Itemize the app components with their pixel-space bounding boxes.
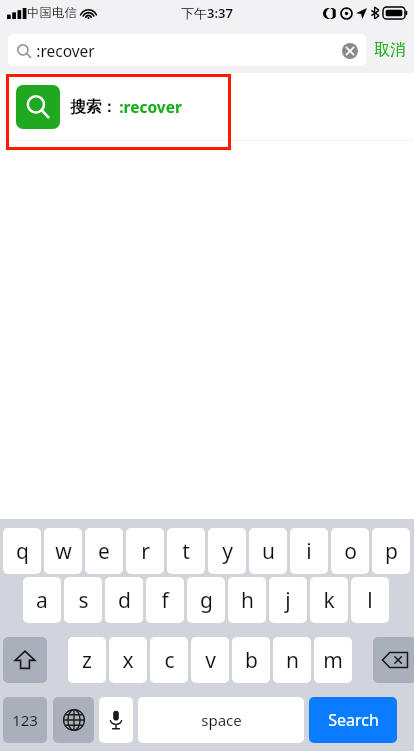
button[interactable]: b bbox=[232, 637, 270, 683]
button[interactable]: 搜索： bbox=[0, 73, 414, 140]
staticText: e bbox=[98, 537, 110, 566]
button[interactable]: n bbox=[273, 637, 311, 683]
staticText: 搜索： bbox=[70, 97, 117, 117]
button[interactable]: w bbox=[44, 528, 82, 574]
button[interactable]: x bbox=[109, 637, 147, 683]
button[interactable]: a bbox=[23, 577, 61, 623]
button[interactable]: j bbox=[269, 577, 307, 623]
button[interactable]: Backspace bbox=[373, 637, 414, 683]
staticText: z bbox=[82, 646, 92, 675]
staticText: h bbox=[241, 586, 254, 615]
staticText: y bbox=[222, 537, 233, 566]
button[interactable]: :recover bbox=[8, 34, 366, 66]
staticText: l bbox=[367, 586, 373, 615]
staticText: Search bbox=[328, 709, 379, 731]
staticText: o bbox=[344, 537, 357, 566]
staticText: m bbox=[323, 646, 343, 675]
staticText: 取消 bbox=[374, 40, 406, 60]
staticText: 下午3:37 bbox=[181, 4, 233, 22]
button[interactable]: o bbox=[331, 528, 369, 574]
staticText: r bbox=[141, 537, 150, 566]
staticText: f bbox=[161, 586, 169, 615]
button[interactable]: Dictation bbox=[99, 697, 133, 743]
button[interactable]: d bbox=[105, 577, 143, 623]
staticText: space bbox=[201, 710, 242, 730]
button[interactable]: q bbox=[3, 528, 41, 574]
button[interactable]: p bbox=[372, 528, 410, 574]
staticText: k bbox=[323, 586, 335, 615]
button[interactable]: m bbox=[314, 637, 352, 683]
staticText: g bbox=[200, 586, 213, 615]
button[interactable]: Shift bbox=[3, 637, 47, 683]
button[interactable]: 取消 bbox=[374, 40, 406, 60]
button[interactable]: e bbox=[85, 528, 123, 574]
button[interactable]: h bbox=[228, 577, 266, 623]
button[interactable]: Search bbox=[309, 697, 397, 743]
button[interactable]: t bbox=[167, 528, 205, 574]
staticText: v bbox=[205, 646, 216, 675]
button[interactable]: c bbox=[150, 637, 188, 683]
staticText: w bbox=[55, 537, 72, 566]
button[interactable]: u bbox=[249, 528, 287, 574]
staticText: i bbox=[306, 537, 312, 566]
other: Backspace bbox=[382, 651, 408, 669]
other: Change keyboard bbox=[63, 709, 85, 731]
staticText: c bbox=[164, 646, 175, 675]
staticText: p bbox=[385, 537, 398, 566]
staticText: s bbox=[78, 586, 89, 615]
staticText: j bbox=[285, 586, 291, 615]
staticText: x bbox=[122, 646, 134, 675]
staticText: 123 bbox=[12, 710, 38, 730]
staticText: a bbox=[36, 586, 48, 615]
staticText: b bbox=[245, 646, 258, 675]
other: Shift bbox=[14, 649, 36, 671]
button[interactable]: 123 bbox=[3, 697, 47, 743]
other: Dictation bbox=[109, 709, 123, 731]
button[interactable]: l bbox=[351, 577, 389, 623]
button[interactable]: space bbox=[138, 697, 304, 743]
staticText: n bbox=[286, 646, 299, 675]
button[interactable]: Clear text bbox=[340, 41, 360, 61]
staticText: u bbox=[262, 537, 275, 566]
staticText: :recover bbox=[119, 96, 182, 117]
button[interactable]: g bbox=[187, 577, 225, 623]
button[interactable]: i bbox=[290, 528, 328, 574]
staticText: t bbox=[182, 537, 190, 566]
button[interactable]: k bbox=[310, 577, 348, 623]
button[interactable]: r bbox=[126, 528, 164, 574]
button[interactable]: Change keyboard bbox=[53, 697, 94, 743]
button[interactable]: s bbox=[64, 577, 102, 623]
button[interactable]: y bbox=[208, 528, 246, 574]
staticText: :recover bbox=[36, 40, 95, 61]
button[interactable]: v bbox=[191, 637, 229, 683]
button[interactable]: f bbox=[146, 577, 184, 623]
button[interactable]: z bbox=[68, 637, 106, 683]
staticText: d bbox=[118, 586, 131, 615]
staticText: 中国电信 bbox=[27, 5, 77, 21]
staticText: q bbox=[16, 537, 29, 566]
